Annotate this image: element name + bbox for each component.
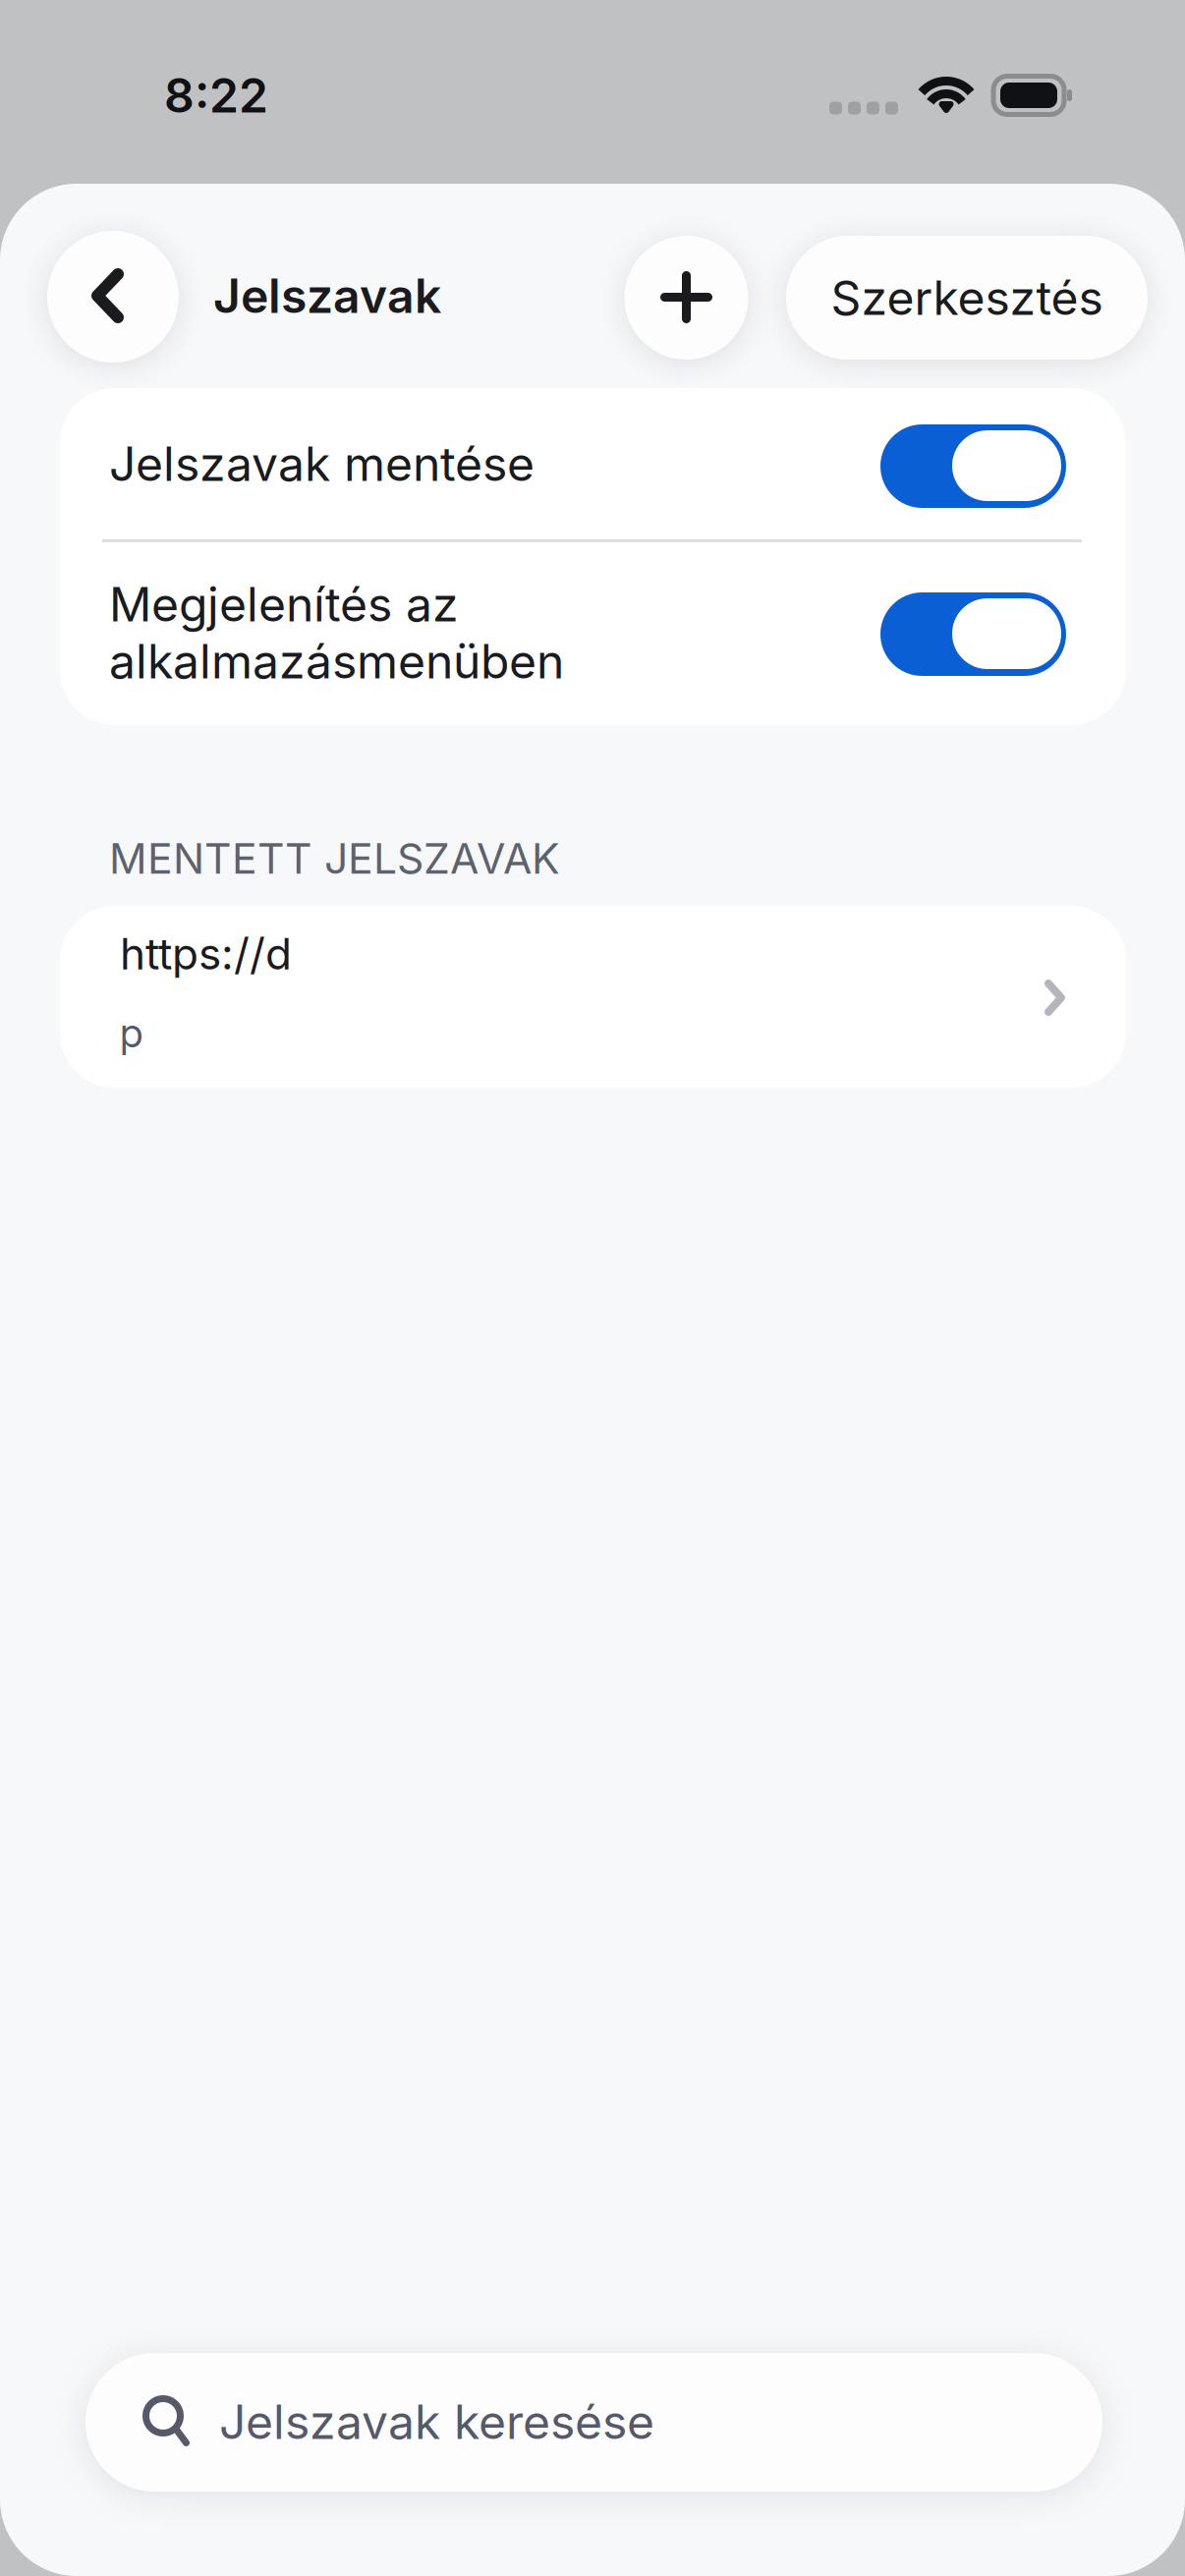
button[interactable]: Add password [622,236,751,360]
button[interactable]: Megjelenítés az alkalmazásmenüben [60,542,1126,727]
button[interactable]: Jelszavak keresése [85,2353,1102,2492]
staticText: MENTETT JELSZAVAK [109,833,560,884]
button[interactable]: Jelszavak mentése [60,388,1126,540]
staticText: Szerkesztés [831,269,1103,326]
button[interactable]: Szerkesztés [786,236,1148,360]
staticText: Megjelenítés az alkalmazásmenüben [109,576,564,690]
button[interactable]: https://d [60,906,1126,1088]
staticText: Jelszavak [213,267,441,324]
button[interactable]: Back [47,231,179,363]
staticText: Jelszavak mentése [109,435,535,492]
staticText: https://d [120,927,292,980]
staticText: 8:22 [164,67,268,124]
staticText: p [120,1008,142,1057]
staticText: Jelszavak keresése [219,2393,654,2450]
